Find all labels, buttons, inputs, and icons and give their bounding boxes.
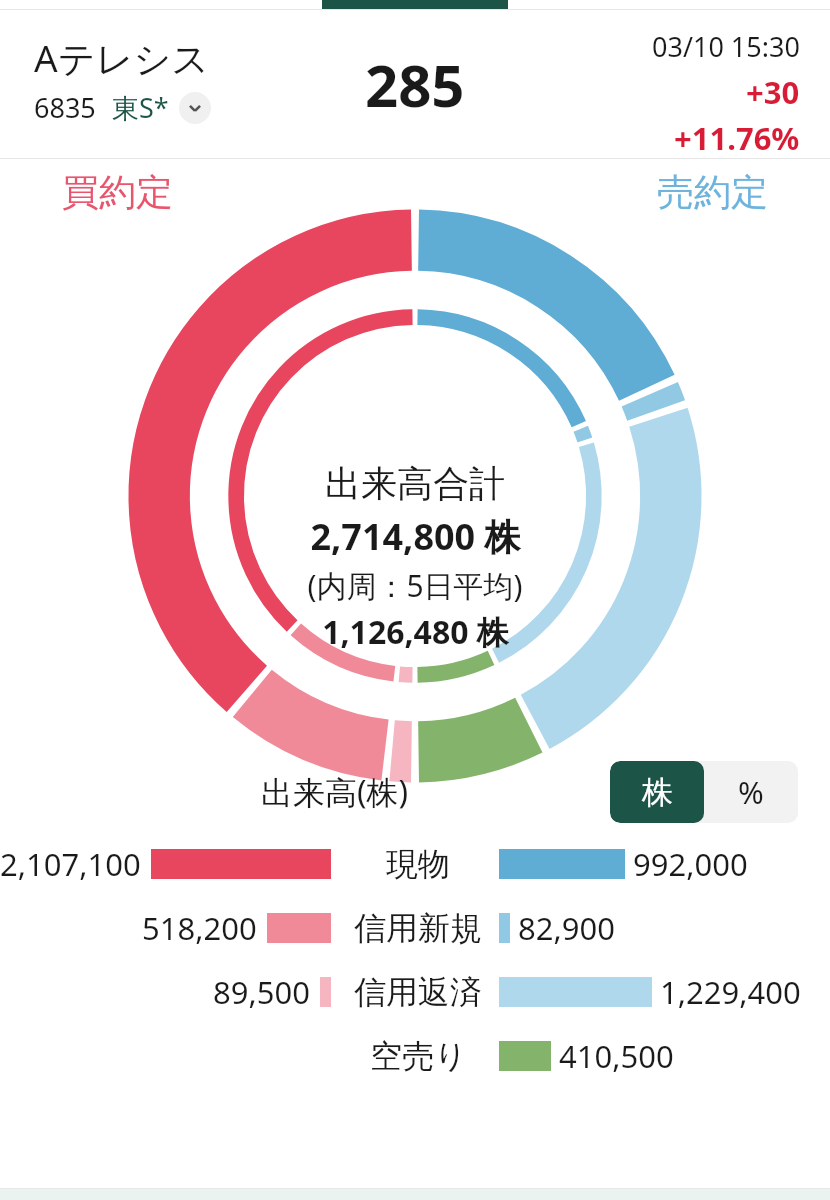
button[interactable]: 株 bbox=[610, 761, 704, 823]
staticText: 82,900 bbox=[518, 907, 615, 949]
staticText: 03/10 15:30 bbox=[652, 28, 800, 65]
staticText: 410,500 bbox=[559, 1035, 674, 1077]
staticText: +11.76% bbox=[674, 117, 800, 158]
staticText: 6835 bbox=[34, 89, 96, 126]
button[interactable]: 2,107,100 bbox=[0, 838, 830, 890]
staticText: (内周：5日平均) bbox=[307, 565, 523, 606]
staticText: 出来高(株) bbox=[261, 770, 409, 814]
staticText: 買約定 bbox=[62, 169, 173, 216]
staticText: 518,200 bbox=[142, 907, 257, 949]
staticText: 株 bbox=[642, 773, 673, 812]
staticText: 空売り bbox=[370, 1036, 467, 1076]
button[interactable]: 518,200 bbox=[0, 902, 830, 954]
button[interactable]: Market selector bbox=[179, 92, 211, 124]
staticText: 1,229,400 bbox=[660, 971, 801, 1013]
staticText: 信用返済 bbox=[354, 972, 482, 1012]
staticText: 89,500 bbox=[213, 971, 310, 1013]
staticText: % bbox=[738, 771, 764, 813]
staticText: +30 bbox=[746, 71, 800, 113]
staticText: 信用新規 bbox=[354, 908, 482, 948]
staticText: Aテレシス bbox=[34, 32, 210, 83]
staticText: 出来高合計 bbox=[325, 461, 505, 506]
staticText: 285 bbox=[365, 45, 465, 124]
button[interactable]: % bbox=[704, 761, 798, 823]
staticText: 2,107,100 bbox=[0, 843, 141, 885]
staticText: 2,714,800 株 bbox=[310, 512, 521, 561]
staticText: 東S* bbox=[112, 89, 169, 126]
button[interactable]: Aテレシス bbox=[0, 10, 830, 158]
staticText: 1,126,480 株 bbox=[322, 610, 509, 654]
staticText: 現物 bbox=[386, 844, 450, 884]
button[interactable]: 空売り bbox=[0, 1030, 830, 1082]
button[interactable]: 89,500 bbox=[0, 966, 830, 1018]
staticText: 売約定 bbox=[657, 169, 768, 216]
staticText: 992,000 bbox=[633, 843, 748, 885]
